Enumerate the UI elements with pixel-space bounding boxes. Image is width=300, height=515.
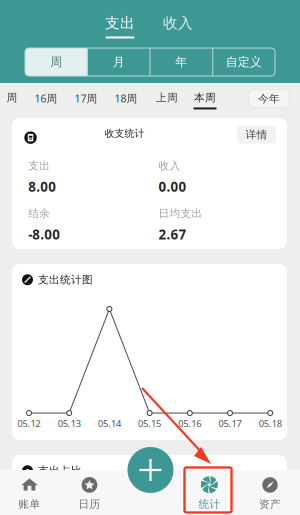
button[interactable]: 月 (87, 48, 150, 76)
staticText: 2.67 (158, 225, 186, 243)
staticText: 支出 (105, 14, 135, 32)
staticText: 统计 (198, 497, 220, 511)
staticText: -8.00 (28, 225, 60, 243)
button[interactable]: 自定义 (212, 48, 275, 76)
staticText: 0.00 (158, 177, 186, 196)
button[interactable]: 年 (150, 48, 212, 76)
staticText: 18周 (114, 91, 137, 105)
button[interactable]: 日历 (61, 470, 117, 515)
staticText: 周 (6, 91, 17, 104)
staticText: 05.16 (178, 417, 201, 430)
staticText: 自定义 (226, 54, 262, 69)
button[interactable]: 17周 (66, 91, 106, 110)
staticText: 收入 (163, 14, 193, 32)
staticText: 收支统计 (104, 127, 144, 140)
staticText: 本周 (194, 91, 216, 104)
staticText: 支出 (28, 159, 50, 172)
staticText: 账单 (18, 497, 40, 511)
staticText: 05.12 (17, 417, 40, 430)
button[interactable]: 支出 (92, 14, 148, 38)
button[interactable]: 今年 (249, 90, 289, 108)
button[interactable]: 账单 (1, 470, 57, 515)
staticText: 月 (113, 54, 125, 69)
staticText: 日历 (78, 497, 100, 511)
staticText: 收入 (158, 159, 180, 172)
staticText: 年 (175, 54, 187, 69)
button[interactable]: 18周 (106, 91, 146, 110)
staticText: 05.14 (98, 417, 121, 430)
staticText: 详情 (245, 128, 267, 141)
button[interactable]: 周 (0, 91, 32, 109)
staticText: 支出占比 (38, 464, 82, 477)
button[interactable]: 本周 (185, 91, 225, 109)
staticText: 17周 (74, 91, 97, 105)
button[interactable]: Add (127, 447, 173, 493)
staticText: 05.17 (218, 417, 241, 430)
staticText: 上周 (156, 91, 178, 104)
staticText: 今年 (258, 92, 280, 105)
staticText: 16周 (34, 91, 57, 105)
staticText: 支出统计图 (38, 273, 93, 286)
button[interactable]: 资产 (242, 470, 298, 515)
staticText: 05.18 (259, 417, 282, 430)
button[interactable]: 上周 (147, 91, 187, 109)
staticText: 日均支出 (158, 207, 202, 220)
button[interactable]: 收入 (150, 14, 206, 38)
button[interactable]: 详情 (237, 126, 276, 144)
staticText: 资产 (259, 497, 281, 511)
button[interactable]: 统计 (181, 470, 237, 515)
staticText: 结余 (28, 207, 50, 220)
staticText: 周 (50, 54, 62, 69)
button[interactable]: 16周 (26, 91, 66, 110)
staticText: 05.13 (58, 417, 81, 430)
staticText: 05.15 (138, 417, 161, 430)
button[interactable]: 周 (25, 48, 87, 76)
staticText: 8.00 (28, 177, 56, 196)
